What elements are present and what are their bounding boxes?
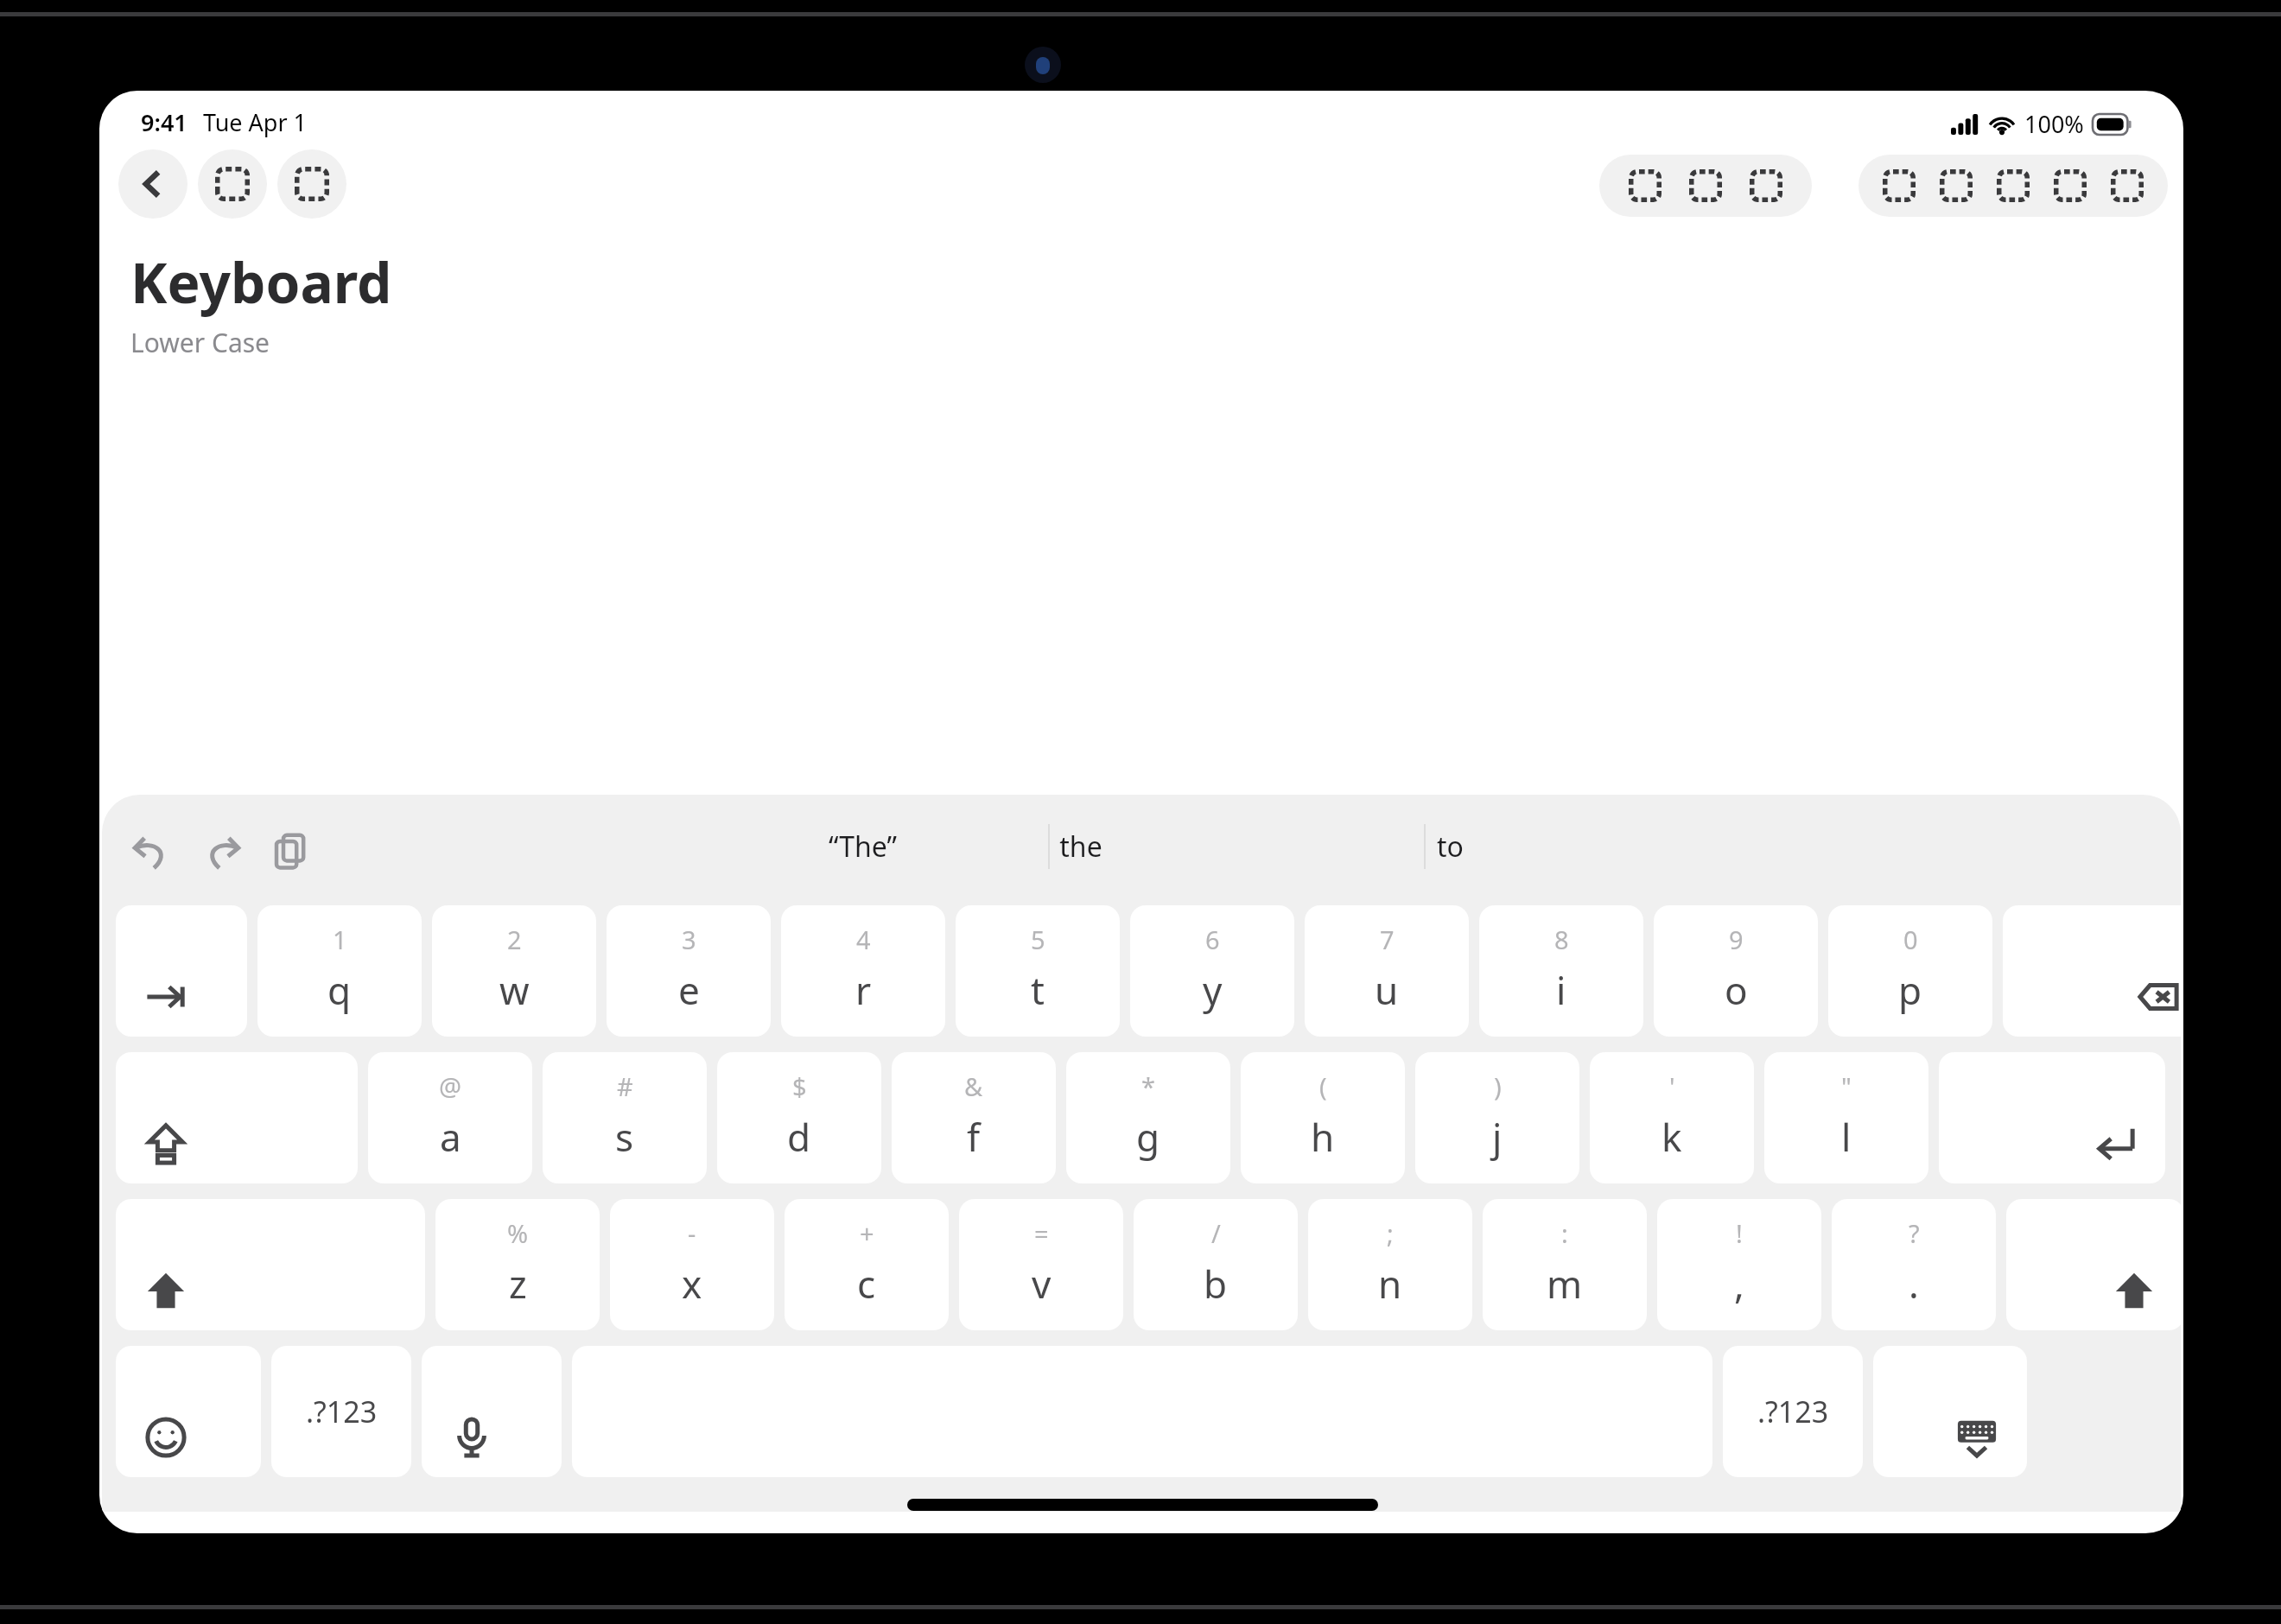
staticText: =: [1034, 1216, 1049, 1250]
button[interactable]: Shift: [116, 1199, 425, 1330]
staticText: b: [1204, 1258, 1228, 1310]
button[interactable]: Caps Lock: [116, 1052, 358, 1183]
staticText: d: [787, 1111, 811, 1163]
button[interactable]: #: [543, 1052, 707, 1183]
button[interactable]: Undo: [124, 824, 180, 879]
button[interactable]: !: [1657, 1199, 1821, 1330]
staticText: Keyboard: [130, 244, 392, 320]
button[interactable]: Paste: [263, 824, 318, 879]
button[interactable]: 2: [432, 905, 596, 1037]
staticText: 4: [856, 923, 871, 956]
button[interactable]: 5: [956, 905, 1120, 1037]
button[interactable]: @: [368, 1052, 532, 1183]
staticText: e: [678, 964, 700, 1016]
button[interactable]: the: [951, 815, 1210, 878]
button[interactable]: Back: [118, 149, 187, 219]
button[interactable]: (: [1241, 1052, 1405, 1183]
button[interactable]: +: [785, 1199, 949, 1330]
staticText: ?: [1909, 1216, 1920, 1250]
button[interactable]: Emoji: [116, 1346, 261, 1477]
button[interactable]: $: [717, 1052, 881, 1183]
staticText: Lower Case: [130, 325, 270, 360]
button[interactable]: ): [1415, 1052, 1579, 1183]
staticText: .?123: [1757, 1392, 1829, 1431]
button[interactable]: ?: [1832, 1199, 1996, 1330]
staticText: $: [792, 1069, 807, 1103]
button[interactable]: %: [435, 1199, 600, 1330]
button[interactable]: to: [1320, 815, 1579, 878]
button[interactable]: -: [610, 1199, 774, 1330]
button[interactable]: 7: [1305, 905, 1469, 1037]
staticText: l: [1841, 1111, 1852, 1163]
staticText: u: [1375, 964, 1399, 1016]
staticText: h: [1311, 1111, 1335, 1163]
button[interactable]: Toolbar item 1: [198, 149, 267, 219]
button[interactable]: 0: [1828, 905, 1992, 1037]
button[interactable]: Action 7: [2042, 157, 2099, 214]
staticText: o: [1725, 964, 1748, 1016]
button[interactable]: ': [1590, 1052, 1754, 1183]
staticText: 0: [1903, 923, 1918, 956]
button[interactable]: Action 1: [1615, 155, 1675, 216]
button[interactable]: 9: [1654, 905, 1818, 1037]
staticText: .?123: [306, 1392, 378, 1431]
button[interactable]: Action 6: [1985, 157, 2042, 214]
button[interactable]: &: [892, 1052, 1056, 1183]
button[interactable]: 1: [257, 905, 422, 1037]
staticText: 6: [1205, 923, 1220, 956]
staticText: z: [509, 1258, 527, 1310]
button[interactable]: Redo: [194, 824, 249, 879]
staticText: #: [617, 1069, 633, 1103]
button[interactable]: Action 5: [1928, 157, 1985, 214]
staticText: j: [1492, 1111, 1503, 1163]
button[interactable]: .?123: [271, 1346, 411, 1477]
button[interactable]: ": [1764, 1052, 1928, 1183]
staticText: y: [1203, 964, 1223, 1016]
button[interactable]: =: [959, 1199, 1123, 1330]
staticText: 5: [1031, 923, 1045, 956]
staticText: 1: [333, 923, 347, 956]
staticText: &: [964, 1069, 983, 1103]
button[interactable]: .?123: [1723, 1346, 1863, 1477]
button[interactable]: Toolbar item 2: [277, 149, 346, 219]
staticText: -: [688, 1216, 696, 1250]
staticText: n: [1378, 1258, 1402, 1310]
button[interactable]: “The”: [733, 815, 992, 878]
staticText: f: [967, 1111, 981, 1163]
button[interactable]: 4: [781, 905, 945, 1037]
staticText: 3: [682, 923, 696, 956]
button[interactable]: Action 2: [1675, 155, 1736, 216]
button[interactable]: 6: [1130, 905, 1294, 1037]
button[interactable]: Return: [1939, 1052, 2165, 1183]
button[interactable]: :: [1483, 1199, 1647, 1330]
staticText: x: [682, 1258, 702, 1310]
button[interactable]: Action 3: [1736, 155, 1796, 216]
button[interactable]: Dictate: [422, 1346, 562, 1477]
staticText: a: [440, 1111, 461, 1163]
button[interactable]: Action 8: [2099, 157, 2156, 214]
button[interactable]: *: [1066, 1052, 1230, 1183]
button[interactable]: Backspace: [2003, 905, 2181, 1037]
staticText: m: [1547, 1258, 1583, 1310]
button[interactable]: Hide Keyboard: [1873, 1346, 2027, 1477]
staticText: 2: [507, 923, 522, 956]
button[interactable]: 8: [1479, 905, 1643, 1037]
staticText: ,: [1734, 1258, 1744, 1310]
staticText: ": [1841, 1069, 1852, 1103]
staticText: .: [1909, 1258, 1919, 1310]
button[interactable]: 3: [607, 905, 771, 1037]
staticText: 8: [1554, 923, 1569, 956]
staticText: p: [1898, 964, 1922, 1016]
staticText: 100%: [2024, 108, 2084, 140]
staticText: Tue Apr 1: [203, 106, 308, 138]
staticText: +: [860, 1216, 874, 1250]
staticText: 7: [1380, 923, 1395, 956]
staticText: *: [1141, 1069, 1155, 1103]
button[interactable]: Tab: [116, 905, 247, 1037]
button[interactable]: Shift: [2006, 1199, 2181, 1330]
button[interactable]: ;: [1308, 1199, 1472, 1330]
button[interactable]: Action 4: [1871, 157, 1928, 214]
staticText: v: [1032, 1258, 1052, 1310]
button[interactable]: /: [1134, 1199, 1298, 1330]
